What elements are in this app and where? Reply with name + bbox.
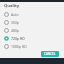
button[interactable]: 480p	[3, 26, 61, 34]
staticText: Auto	[11, 12, 19, 17]
staticText: 360p	[11, 20, 19, 25]
button[interactable]: 1080p HD	[3, 42, 61, 50]
button[interactable]: CANCEL	[41, 51, 59, 57]
staticText: 480p	[11, 28, 19, 33]
button[interactable]: Auto	[3, 10, 61, 18]
button[interactable]: 360p	[3, 18, 61, 26]
staticText: 720p HD	[11, 36, 25, 41]
button[interactable]: 720p HD	[3, 34, 61, 42]
staticText: CANCEL	[44, 52, 56, 56]
staticText: Quality	[4, 3, 20, 9]
staticText: 1080p HD	[11, 44, 27, 49]
